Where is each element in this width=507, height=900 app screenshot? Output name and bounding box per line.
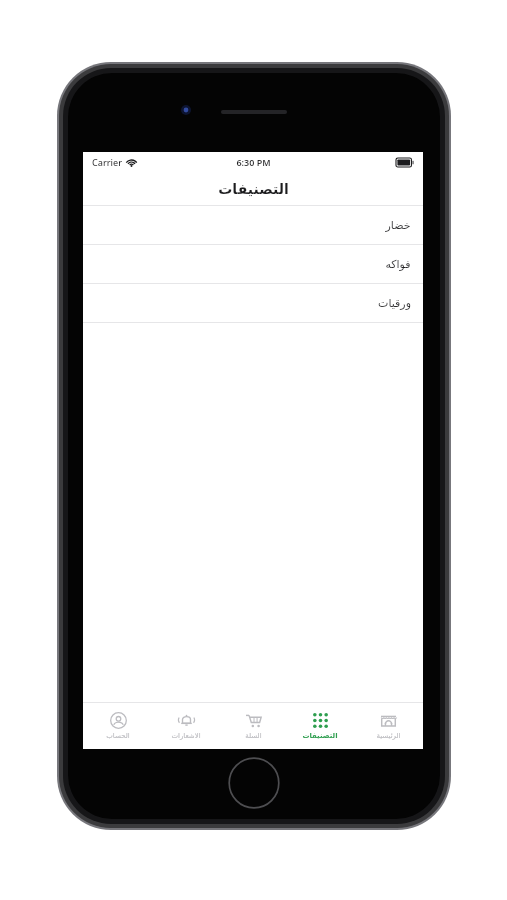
- button[interactable]: ورقيات: [83, 284, 423, 322]
- button[interactable]: Home: [356, 703, 420, 749]
- staticText: خضار: [385, 219, 411, 232]
- button[interactable]: Notifications: [154, 703, 218, 749]
- button[interactable]: Cart: [221, 703, 285, 749]
- button[interactable]: فواكه: [83, 245, 423, 283]
- staticText: فواكه: [385, 258, 411, 271]
- staticText: التصنيفات: [302, 732, 338, 740]
- staticText: ورقيات: [378, 297, 411, 310]
- button[interactable]: Account: [86, 703, 150, 749]
- button[interactable]: Categories: [288, 703, 352, 749]
- staticText: الحساب: [106, 732, 130, 740]
- staticText: الرئيسية: [376, 732, 401, 740]
- staticText: السلة: [245, 732, 262, 740]
- button[interactable]: خضار: [83, 206, 423, 244]
- staticText: الاشعارات: [171, 732, 201, 740]
- staticText: Carrier: [92, 156, 122, 168]
- staticText: 6:30 PM: [236, 156, 271, 168]
- staticText: التصنيفات: [218, 181, 289, 197]
